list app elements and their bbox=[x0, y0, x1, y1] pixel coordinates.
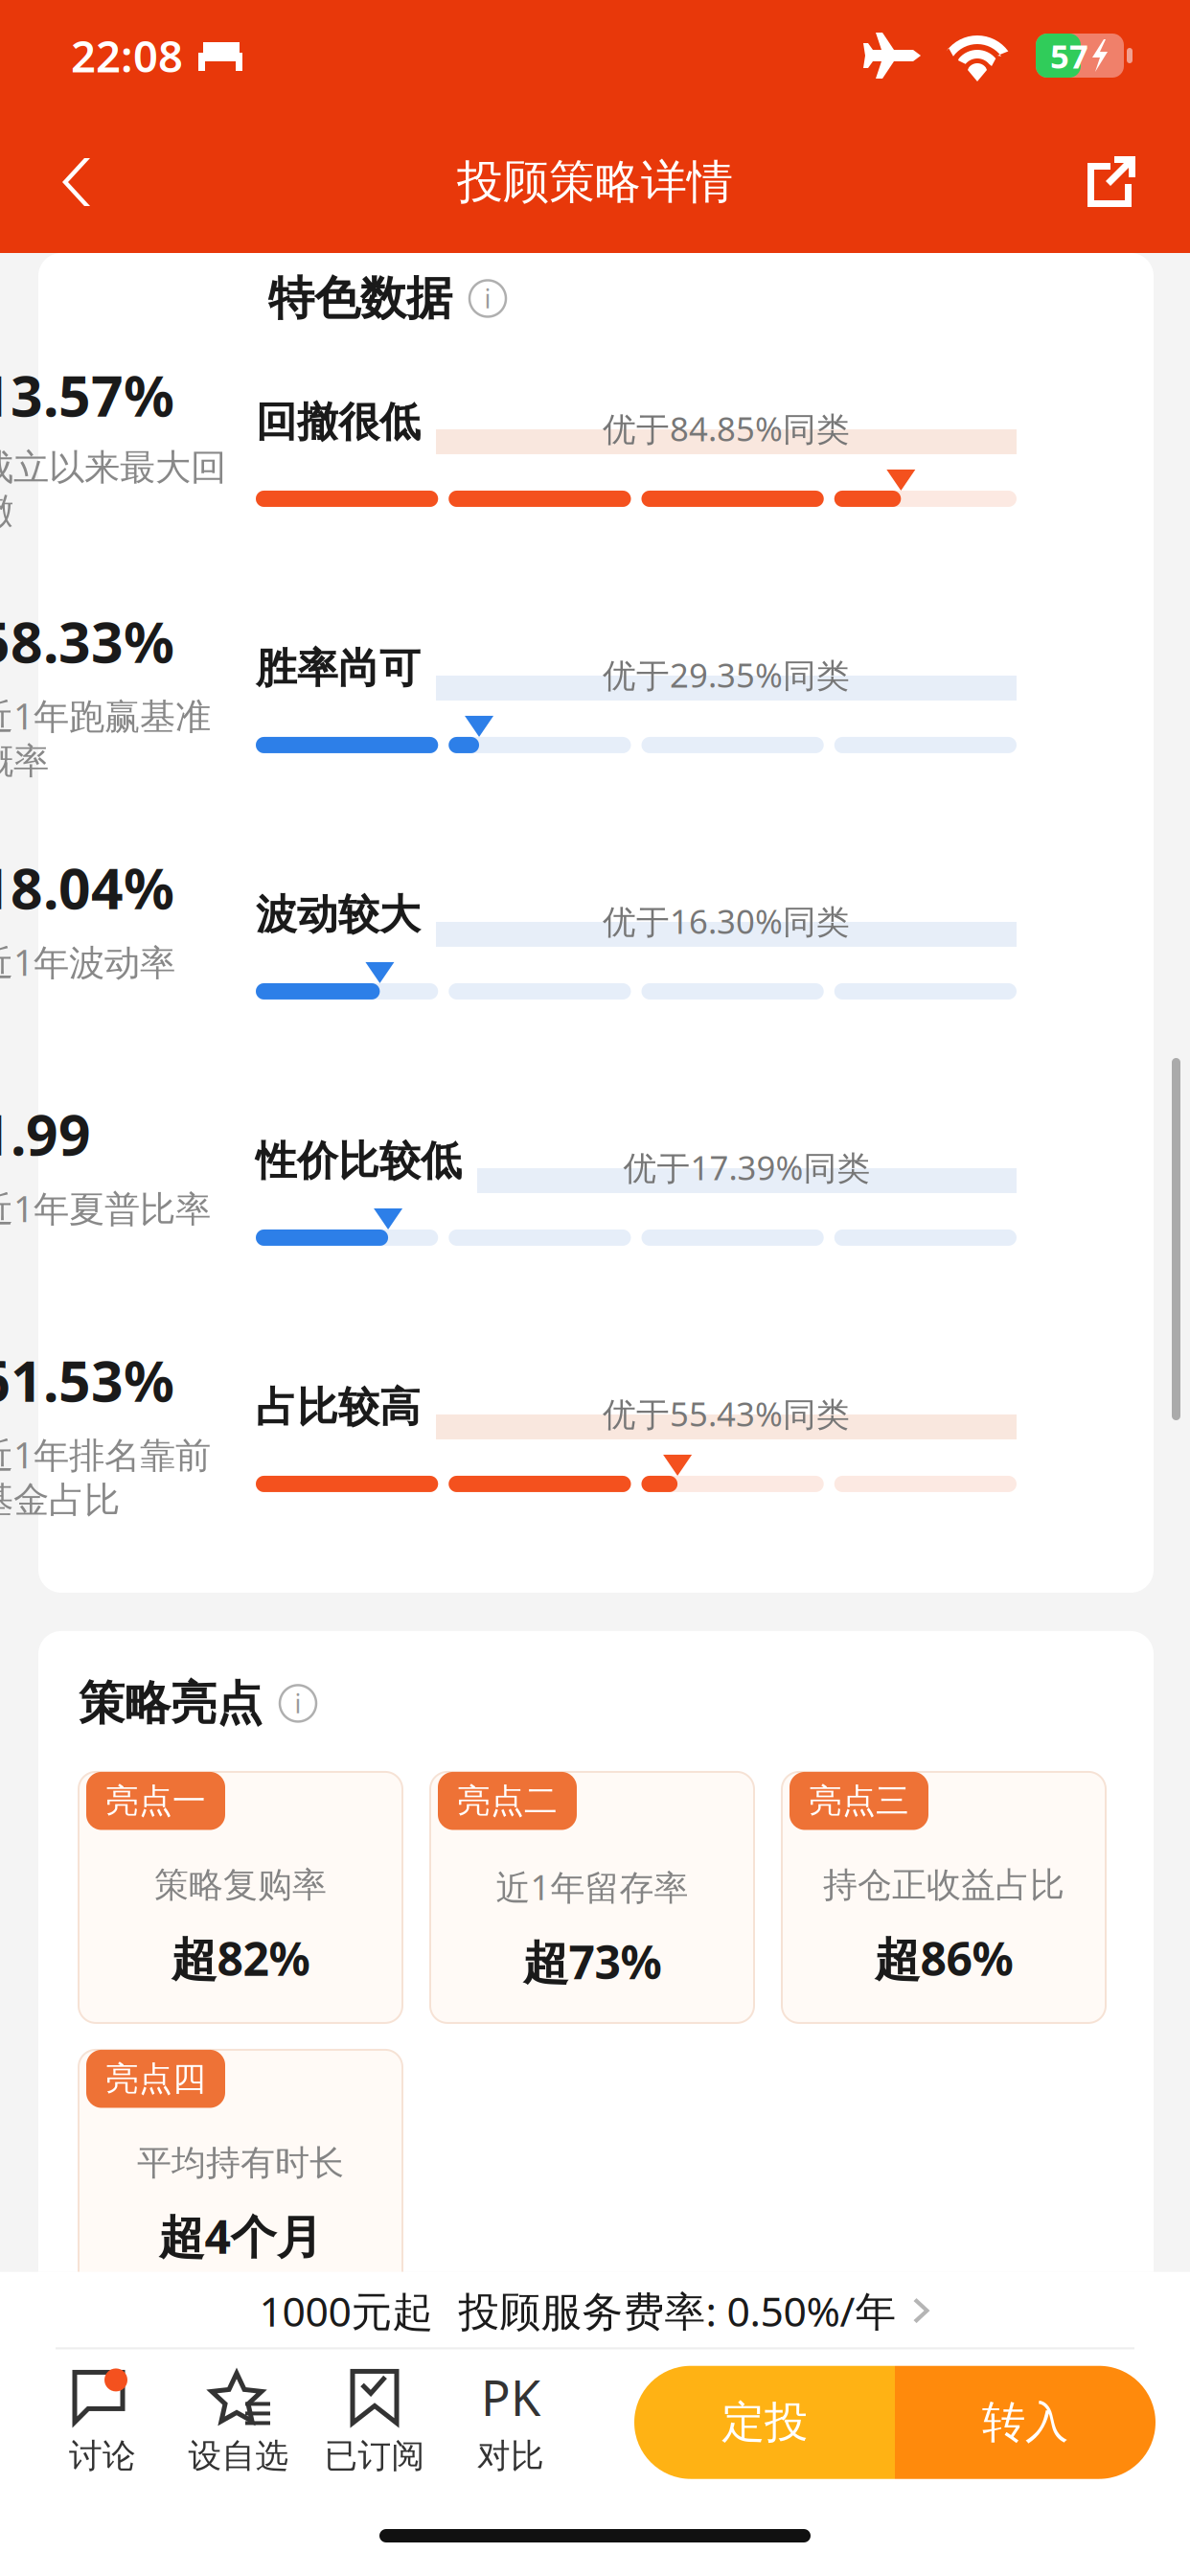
staticText: 回撤很低 bbox=[256, 397, 421, 447]
button[interactable]: 定投 bbox=[634, 2366, 1156, 2479]
staticText: 优于17.39%同类 bbox=[623, 1145, 870, 1189]
staticText: 策略复购率 bbox=[154, 1864, 327, 1906]
staticText: 61.53% bbox=[0, 1343, 174, 1417]
staticText: 优于84.85%同类 bbox=[603, 406, 850, 450]
button[interactable]: 设自选 bbox=[171, 2357, 307, 2488]
staticText: 平均持有时长 bbox=[137, 2142, 344, 2184]
staticText: 13.57% bbox=[0, 357, 174, 432]
staticText: 设自选 bbox=[188, 2436, 289, 2476]
button[interactable]: PK bbox=[443, 2357, 579, 2488]
staticText: 优于55.43%同类 bbox=[603, 1391, 850, 1435]
button[interactable]: 已订阅 bbox=[307, 2357, 443, 2488]
staticText: 投顾服务费率: 0.50%/年 bbox=[458, 2284, 896, 2338]
staticText: 优于16.30%同类 bbox=[603, 899, 850, 943]
staticText: 18.04% bbox=[0, 850, 174, 925]
staticText: 亮点二 bbox=[457, 1780, 558, 1821]
staticText: 波动较大 bbox=[256, 890, 421, 940]
staticText: 特色数据 bbox=[268, 270, 452, 327]
staticText: 超4个月 bbox=[159, 2205, 322, 2266]
staticText: 22:08 bbox=[71, 27, 183, 84]
staticText: PK bbox=[481, 2365, 540, 2429]
staticText: 讨论 bbox=[69, 2436, 136, 2476]
button[interactable]: Back bbox=[0, 128, 123, 236]
staticText: 近1年波动率 bbox=[0, 938, 175, 986]
staticText: 亮点三 bbox=[809, 1780, 909, 1821]
staticText: 占比较高 bbox=[256, 1382, 421, 1432]
staticText: 超82% bbox=[171, 1927, 310, 1988]
staticText: 亮点四 bbox=[105, 2058, 206, 2099]
staticText: 1000元起 bbox=[259, 2284, 434, 2338]
staticText: 亮点一 bbox=[105, 1780, 206, 1821]
staticText: 转入 bbox=[982, 2396, 1068, 2449]
staticText: i bbox=[484, 282, 491, 315]
staticText: i bbox=[295, 1686, 301, 1720]
staticText: 1.99 bbox=[0, 1096, 91, 1171]
button[interactable]: Share bbox=[1056, 127, 1190, 237]
staticText: 近1年跑赢基准概率 bbox=[0, 692, 211, 783]
staticText: 超73% bbox=[523, 1931, 662, 1992]
staticText: 成立以来最大回撤 bbox=[0, 446, 226, 533]
button[interactable]: 1000元起 bbox=[0, 2272, 1190, 2347]
staticText: 胜率尚可 bbox=[256, 643, 421, 694]
staticText: 近1年留存率 bbox=[496, 1864, 688, 1910]
staticText: 策略亮点 bbox=[79, 1675, 263, 1732]
staticText: 近1年夏普比率 bbox=[0, 1184, 211, 1232]
staticText: 58.33% bbox=[0, 604, 174, 678]
staticText: 持仓正收益占比 bbox=[823, 1864, 1064, 1906]
staticText: 优于29.35%同类 bbox=[603, 653, 850, 697]
staticText: 57 bbox=[1050, 34, 1088, 78]
staticText: 对比 bbox=[477, 2436, 544, 2476]
staticText: 性价比较低 bbox=[256, 1136, 462, 1186]
staticText: 近1年排名靠前基金占比 bbox=[0, 1431, 211, 1522]
staticText: 已订阅 bbox=[324, 2436, 425, 2476]
staticText: 定投 bbox=[721, 2396, 808, 2449]
staticText: 超86% bbox=[874, 1927, 1013, 1988]
button[interactable]: 讨论 bbox=[34, 2357, 171, 2488]
staticText: 投顾策略详情 bbox=[457, 154, 733, 210]
